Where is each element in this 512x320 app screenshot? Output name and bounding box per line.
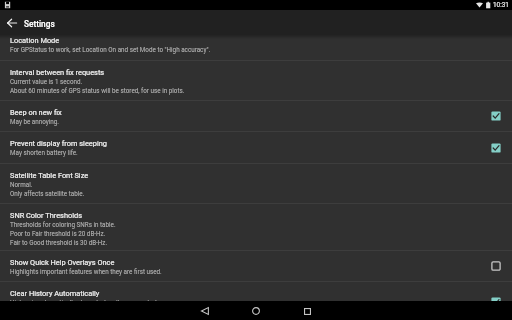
button[interactable]: Show Quick Help Overlays Once: [0, 251, 512, 281]
staticText: Show Quick Help Overlays Once: [10, 258, 115, 267]
staticText: Thresholds for coloring SNRs in table. P…: [10, 221, 116, 246]
staticText: Beep on new fix: [10, 108, 62, 117]
staticText: Settings: [24, 19, 55, 29]
button[interactable]: Location Mode: [0, 35, 512, 60]
button[interactable]: Recent apps: [299, 303, 315, 319]
staticText: SNR Color Thresholds: [10, 211, 82, 220]
staticText: Prevent display from sleeping: [10, 139, 107, 148]
button[interactable]: Clear History Automatically: [0, 282, 512, 301]
staticText: For GPStatus to work, set Location On an…: [10, 46, 211, 53]
button[interactable]: SNR Color Thresholds: [0, 204, 512, 250]
staticText: 10:31: [493, 1, 509, 9]
button[interactable]: Checked: [489, 295, 503, 301]
button[interactable]: Beep on new fix: [0, 101, 512, 131]
button[interactable]: Home: [248, 303, 264, 319]
staticText: Normal. Only affects satellite table.: [10, 181, 85, 197]
staticText: Interval between fix requests: [10, 68, 105, 77]
button[interactable]: Checked: [489, 141, 503, 155]
button[interactable]: Interval between fix requests: [0, 61, 512, 100]
staticText: May shorten battery life.: [10, 149, 78, 156]
button[interactable]: Satellite Table Font Size: [0, 164, 512, 203]
staticText: Clear History Automatically: [10, 289, 100, 298]
button[interactable]: Unchecked: [489, 259, 503, 273]
button[interactable]: Navigate up: [3, 14, 20, 31]
staticText: Current value is 1 second. About 60 minu…: [10, 78, 185, 94]
button[interactable]: Checked: [489, 109, 503, 123]
button[interactable]: Prevent display from sleeping: [0, 132, 512, 163]
staticText: History is automatically cleared when th…: [10, 299, 162, 301]
staticText: Location Mode: [10, 36, 60, 45]
button[interactable]: Back: [197, 303, 213, 319]
staticText: May be annoying.: [10, 118, 59, 125]
staticText: Satellite Table Font Size: [10, 171, 89, 180]
staticText: Highlights important features when they …: [10, 268, 162, 275]
